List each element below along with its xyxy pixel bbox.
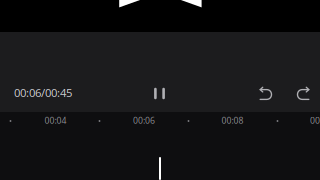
- staticText: 00:06/00:45: [14, 85, 72, 100]
- button[interactable]: Undo: [250, 78, 280, 108]
- staticText: 00:06: [133, 115, 155, 126]
- staticText: 00:04: [44, 115, 66, 126]
- staticText: 00:08: [221, 115, 243, 126]
- button[interactable]: Pause: [137, 73, 181, 113]
- staticText: 00:10: [310, 115, 320, 126]
- button[interactable]: Redo: [288, 78, 318, 108]
